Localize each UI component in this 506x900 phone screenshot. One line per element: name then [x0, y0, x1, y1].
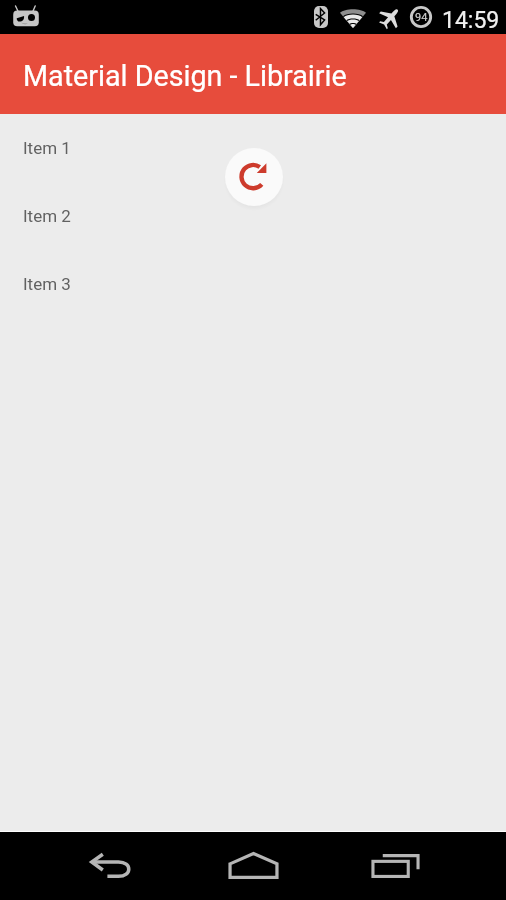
- button[interactable]: Home: [213, 831, 293, 899]
- staticText: 94: [415, 11, 428, 24]
- button[interactable]: Refresh: [225, 148, 283, 206]
- button[interactable]: Recent apps: [355, 831, 435, 899]
- staticText: Item 2: [23, 206, 71, 226]
- button[interactable]: Item 1: [0, 114, 506, 182]
- button[interactable]: Item 2: [0, 182, 506, 250]
- staticText: Item 3: [23, 274, 71, 294]
- staticText: 14:59: [442, 7, 500, 34]
- staticText: Item 1: [23, 138, 71, 158]
- button[interactable]: Item 3: [0, 250, 506, 318]
- staticText: Material Design - Librairie: [23, 59, 347, 93]
- button[interactable]: Back: [72, 831, 152, 899]
